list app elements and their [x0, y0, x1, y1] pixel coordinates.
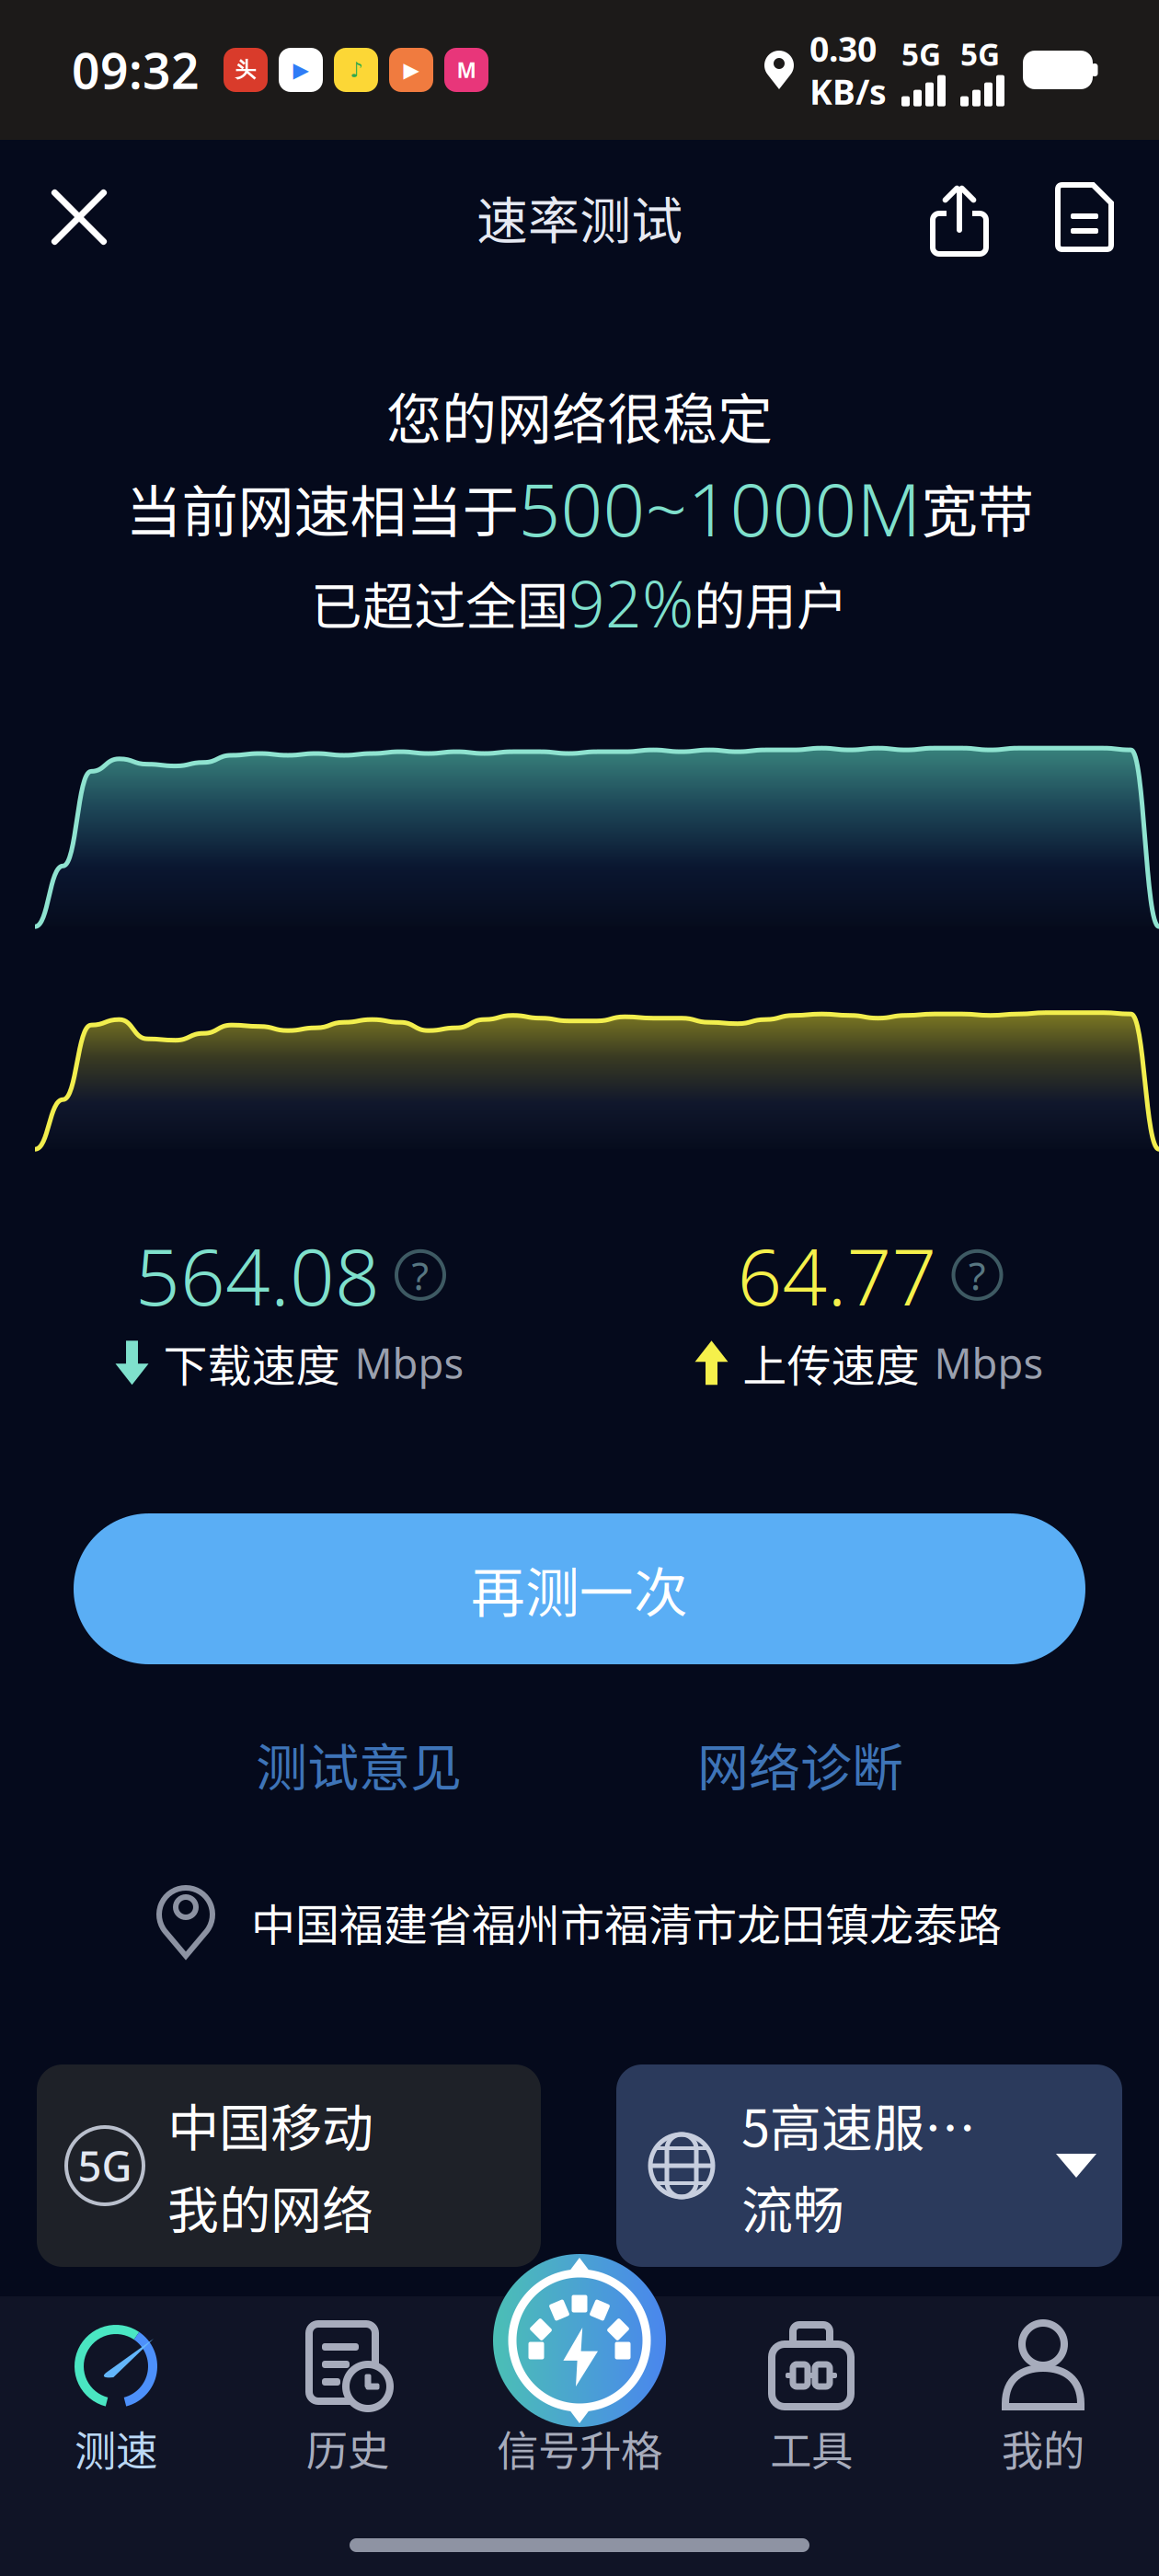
staticText: ▶	[403, 58, 419, 82]
button[interactable]: 分享	[922, 177, 997, 258]
button[interactable]: 网络诊断	[579, 1716, 1021, 1812]
staticText: 测试意见	[256, 1727, 462, 1801]
staticText: 0.30	[809, 26, 877, 71]
button[interactable]: 再测一次	[74, 1513, 1085, 1664]
button[interactable]: 5G	[37, 2064, 541, 2267]
button[interactable]: 报告	[1047, 177, 1122, 258]
staticText: 500~1000M	[518, 459, 921, 557]
staticText: 头	[235, 57, 256, 83]
staticText: 宽带	[921, 467, 1033, 549]
staticText: Mbps	[934, 1335, 1044, 1390]
staticText: 中国移动	[167, 2087, 373, 2162]
button[interactable]: 测试意见	[138, 1716, 579, 1812]
staticText: 64.77	[737, 1223, 937, 1327]
staticText: 我的	[1002, 2418, 1084, 2478]
staticText: 564.08	[135, 1223, 380, 1327]
staticText: 历史	[306, 2418, 389, 2478]
staticText: ?	[969, 1249, 986, 1301]
button[interactable]: 工具	[695, 2313, 927, 2478]
staticText: 流畅	[741, 2169, 844, 2244]
staticText: ?	[412, 1249, 429, 1301]
staticText: 信号升格	[497, 2418, 662, 2478]
staticText: M	[457, 56, 476, 84]
button[interactable]: 关闭	[31, 173, 127, 261]
staticText: 中国福建省福州市福清市龙田镇龙泰路	[251, 1890, 1002, 1954]
staticText: 再测一次	[471, 1550, 688, 1628]
button[interactable]: 历史	[232, 2313, 464, 2478]
staticText: 速率测试	[476, 180, 683, 254]
button[interactable]: 测速	[0, 2313, 232, 2478]
staticText: 5高速服⋯	[741, 2087, 976, 2162]
staticText: 测速	[75, 2418, 157, 2478]
staticText: 5G	[901, 33, 941, 74]
button[interactable]: 信号升格	[464, 2313, 695, 2478]
staticText: KB/s	[809, 69, 887, 114]
staticText: 5G	[960, 33, 1000, 74]
staticText: ♪	[350, 58, 362, 82]
staticText: 5G	[78, 2138, 132, 2193]
staticText: 网络诊断	[697, 1727, 903, 1801]
staticText: Mbps	[355, 1335, 464, 1390]
staticText: 上传速度	[743, 1331, 919, 1395]
button[interactable]: 5高速服⋯	[616, 2064, 1122, 2267]
staticText: 工具	[770, 2418, 853, 2478]
staticText: 92%	[568, 560, 694, 645]
button[interactable]: 我的	[927, 2313, 1159, 2478]
staticText: 已超过全国	[311, 565, 568, 640]
staticText: ▶	[293, 58, 309, 82]
staticText: 09:32	[72, 37, 200, 102]
staticText: 下载速度	[163, 1331, 340, 1395]
staticText: 我的网络	[167, 2169, 373, 2244]
staticText: 的用户	[694, 565, 848, 640]
staticText: 您的网络很稳定	[386, 375, 773, 455]
staticText: 当前网速相当于	[126, 467, 518, 549]
